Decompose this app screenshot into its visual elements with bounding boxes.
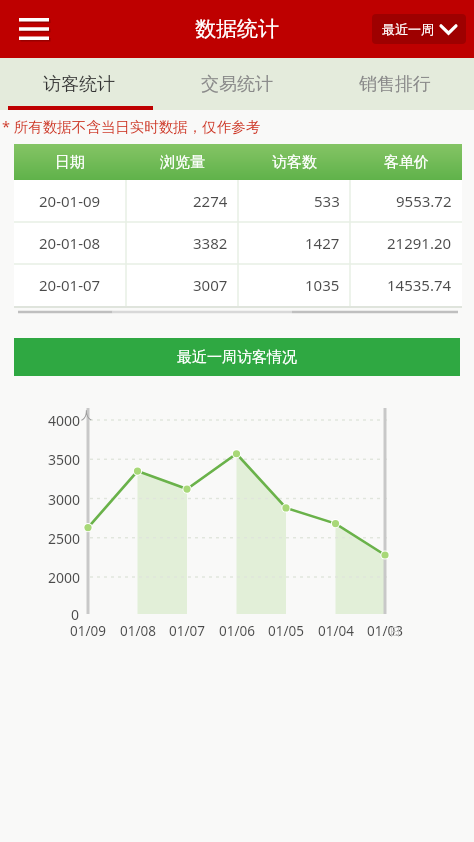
- button[interactable]: 销售排行: [316, 58, 474, 110]
- staticText: 14535.74: [387, 275, 452, 295]
- staticText: 日: [389, 624, 401, 639]
- staticText: 最近一周: [382, 21, 434, 37]
- staticText: 2500: [47, 529, 80, 548]
- button[interactable]: 最近一周访客情况: [14, 338, 460, 376]
- staticText: 01/04: [318, 622, 354, 640]
- staticText: 20-01-07: [39, 275, 101, 295]
- staticText: 01/07: [169, 622, 205, 640]
- staticText: 销售排行: [359, 73, 431, 96]
- staticText: 533: [314, 191, 340, 211]
- staticText: 01/09: [70, 622, 106, 640]
- staticText: 20-01-09: [39, 191, 101, 211]
- staticText: 01/06: [219, 622, 255, 640]
- staticText: 01/05: [268, 622, 304, 640]
- staticText: 21291.20: [387, 233, 452, 253]
- staticText: 访客统计: [43, 73, 115, 96]
- button[interactable]: Menu: [12, 7, 56, 51]
- staticText: 3007: [193, 275, 228, 295]
- staticText: 3382: [193, 233, 228, 253]
- staticText: 1427: [305, 233, 340, 253]
- staticText: 01/03: [367, 622, 403, 640]
- staticText: 3000: [47, 490, 80, 509]
- staticText: 20-01-08: [39, 233, 101, 253]
- staticText: 最近一周访客情况: [177, 348, 297, 367]
- staticText: 人: [81, 408, 92, 422]
- staticText: 客单价: [384, 153, 429, 172]
- staticText: 浏览量: [160, 153, 205, 172]
- staticText: 01/08: [120, 622, 156, 640]
- staticText: 1035: [305, 275, 340, 295]
- staticText: 访客数: [272, 153, 317, 172]
- staticText: 交易统计: [201, 73, 273, 96]
- staticText: 4000: [47, 411, 80, 430]
- staticText: 日期: [55, 153, 85, 172]
- button[interactable]: 访客统计: [0, 58, 158, 110]
- staticText: 数据统计: [195, 16, 279, 42]
- staticText: 2000: [47, 568, 80, 587]
- staticText: * 所有数据不含当日实时数据，仅作参考: [2, 116, 261, 136]
- button[interactable]: 交易统计: [158, 58, 316, 110]
- staticText: 9553.72: [396, 191, 452, 211]
- staticText: 0: [71, 605, 80, 624]
- staticText: 2274: [193, 191, 228, 211]
- button[interactable]: 最近一周: [372, 14, 466, 44]
- staticText: 3500: [47, 450, 80, 469]
